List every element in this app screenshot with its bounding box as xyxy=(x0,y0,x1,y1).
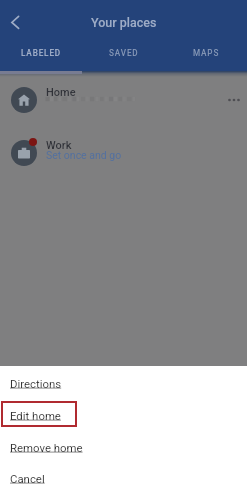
staticText: LABELED xyxy=(21,48,62,58)
staticText: Home xyxy=(46,86,76,99)
staticText: Directions xyxy=(10,377,62,390)
button[interactable]: Work xyxy=(0,126,247,179)
staticText: SAVED xyxy=(109,48,139,58)
button[interactable]: Home xyxy=(0,73,247,126)
button[interactable]: LABELED xyxy=(0,48,83,71)
staticText: Set once and go xyxy=(46,149,122,161)
staticText: Edit home xyxy=(10,409,61,422)
staticText: Your places xyxy=(91,15,157,30)
button[interactable]: MAPS xyxy=(165,48,247,71)
button[interactable]: Navigate up xyxy=(0,0,40,40)
button[interactable]: Edit home xyxy=(0,398,247,430)
button[interactable]: SAVED xyxy=(83,48,165,71)
button[interactable]: Directions xyxy=(0,366,247,398)
staticText: Remove home xyxy=(10,441,83,454)
staticText: Cancel xyxy=(10,472,45,485)
button[interactable]: Cancel xyxy=(0,462,247,493)
staticText: MAPS xyxy=(193,48,220,58)
button[interactable]: More options xyxy=(220,86,247,114)
staticText: Work xyxy=(46,139,72,152)
button[interactable]: Remove home xyxy=(0,430,247,462)
